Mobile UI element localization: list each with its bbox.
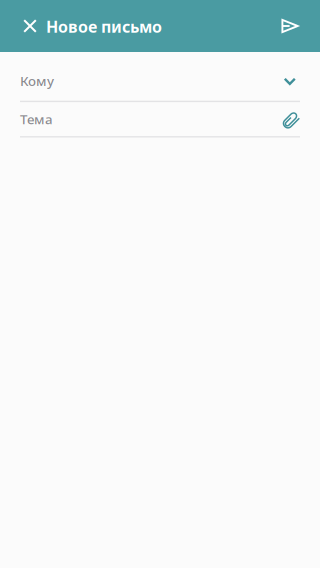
button[interactable]: Кому [0, 52, 320, 101]
staticText: Новое письмо [46, 16, 162, 37]
button[interactable]: Close [0, 0, 46, 52]
button[interactable]: Send [268, 0, 312, 52]
staticText: Кому [20, 72, 54, 90]
staticText: Тема [20, 110, 53, 128]
button[interactable]: Тема [0, 102, 320, 136]
